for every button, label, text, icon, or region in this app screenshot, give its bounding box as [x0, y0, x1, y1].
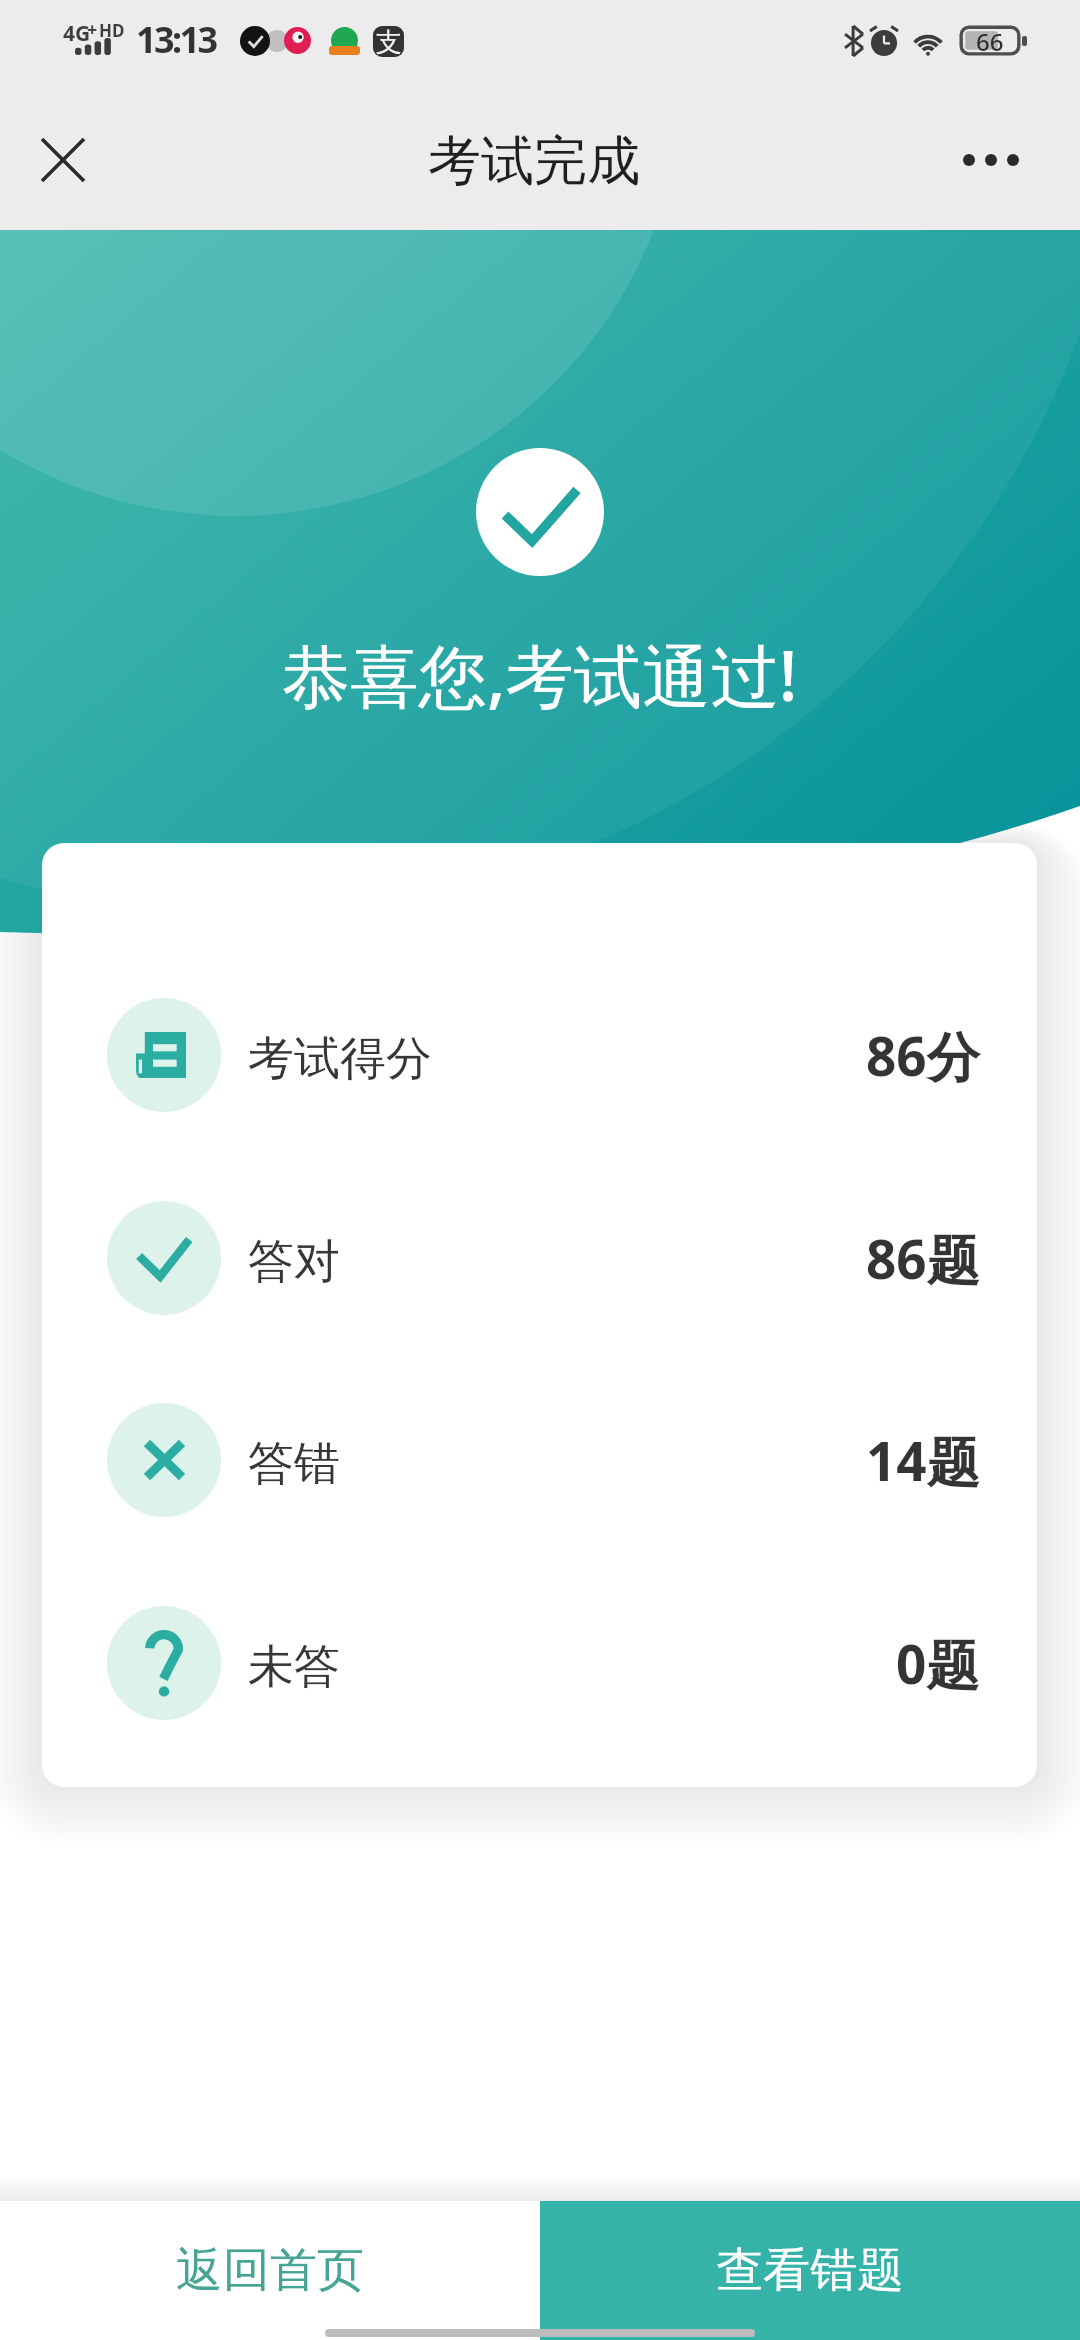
button[interactable]: More options [945, 124, 1037, 196]
staticText: 13:13 [136, 15, 216, 64]
staticText: HD [99, 19, 125, 42]
button[interactable]: 未答 [42, 1606, 1037, 1720]
staticText: 考试完成 [428, 128, 640, 195]
staticText: 查看错题 [716, 2241, 904, 2300]
button[interactable]: 答对 [42, 1201, 1037, 1315]
button[interactable]: Close [21, 120, 107, 206]
button[interactable]: 返回首页 [0, 2201, 540, 2340]
staticText: 未答 [248, 1638, 340, 1696]
button[interactable]: 考试得分 [42, 998, 1037, 1112]
staticText: 86分 [866, 1019, 980, 1091]
staticText: 14题 [866, 1424, 980, 1496]
staticText: 恭喜您,考试通过! [282, 628, 798, 721]
staticText: 86题 [866, 1222, 980, 1294]
staticText: 4G [63, 19, 91, 48]
staticText: + [87, 17, 98, 42]
button[interactable]: 答错 [42, 1403, 1037, 1517]
staticText: 0题 [896, 1627, 980, 1699]
staticText: 支 [376, 26, 402, 57]
staticText: 答错 [248, 1435, 340, 1493]
staticText: 答对 [248, 1233, 340, 1291]
staticText: 考试得分 [248, 1030, 432, 1088]
staticText: 返回首页 [176, 2241, 364, 2300]
button[interactable]: 查看错题 [540, 2201, 1080, 2340]
staticText: 66 [976, 25, 1004, 56]
